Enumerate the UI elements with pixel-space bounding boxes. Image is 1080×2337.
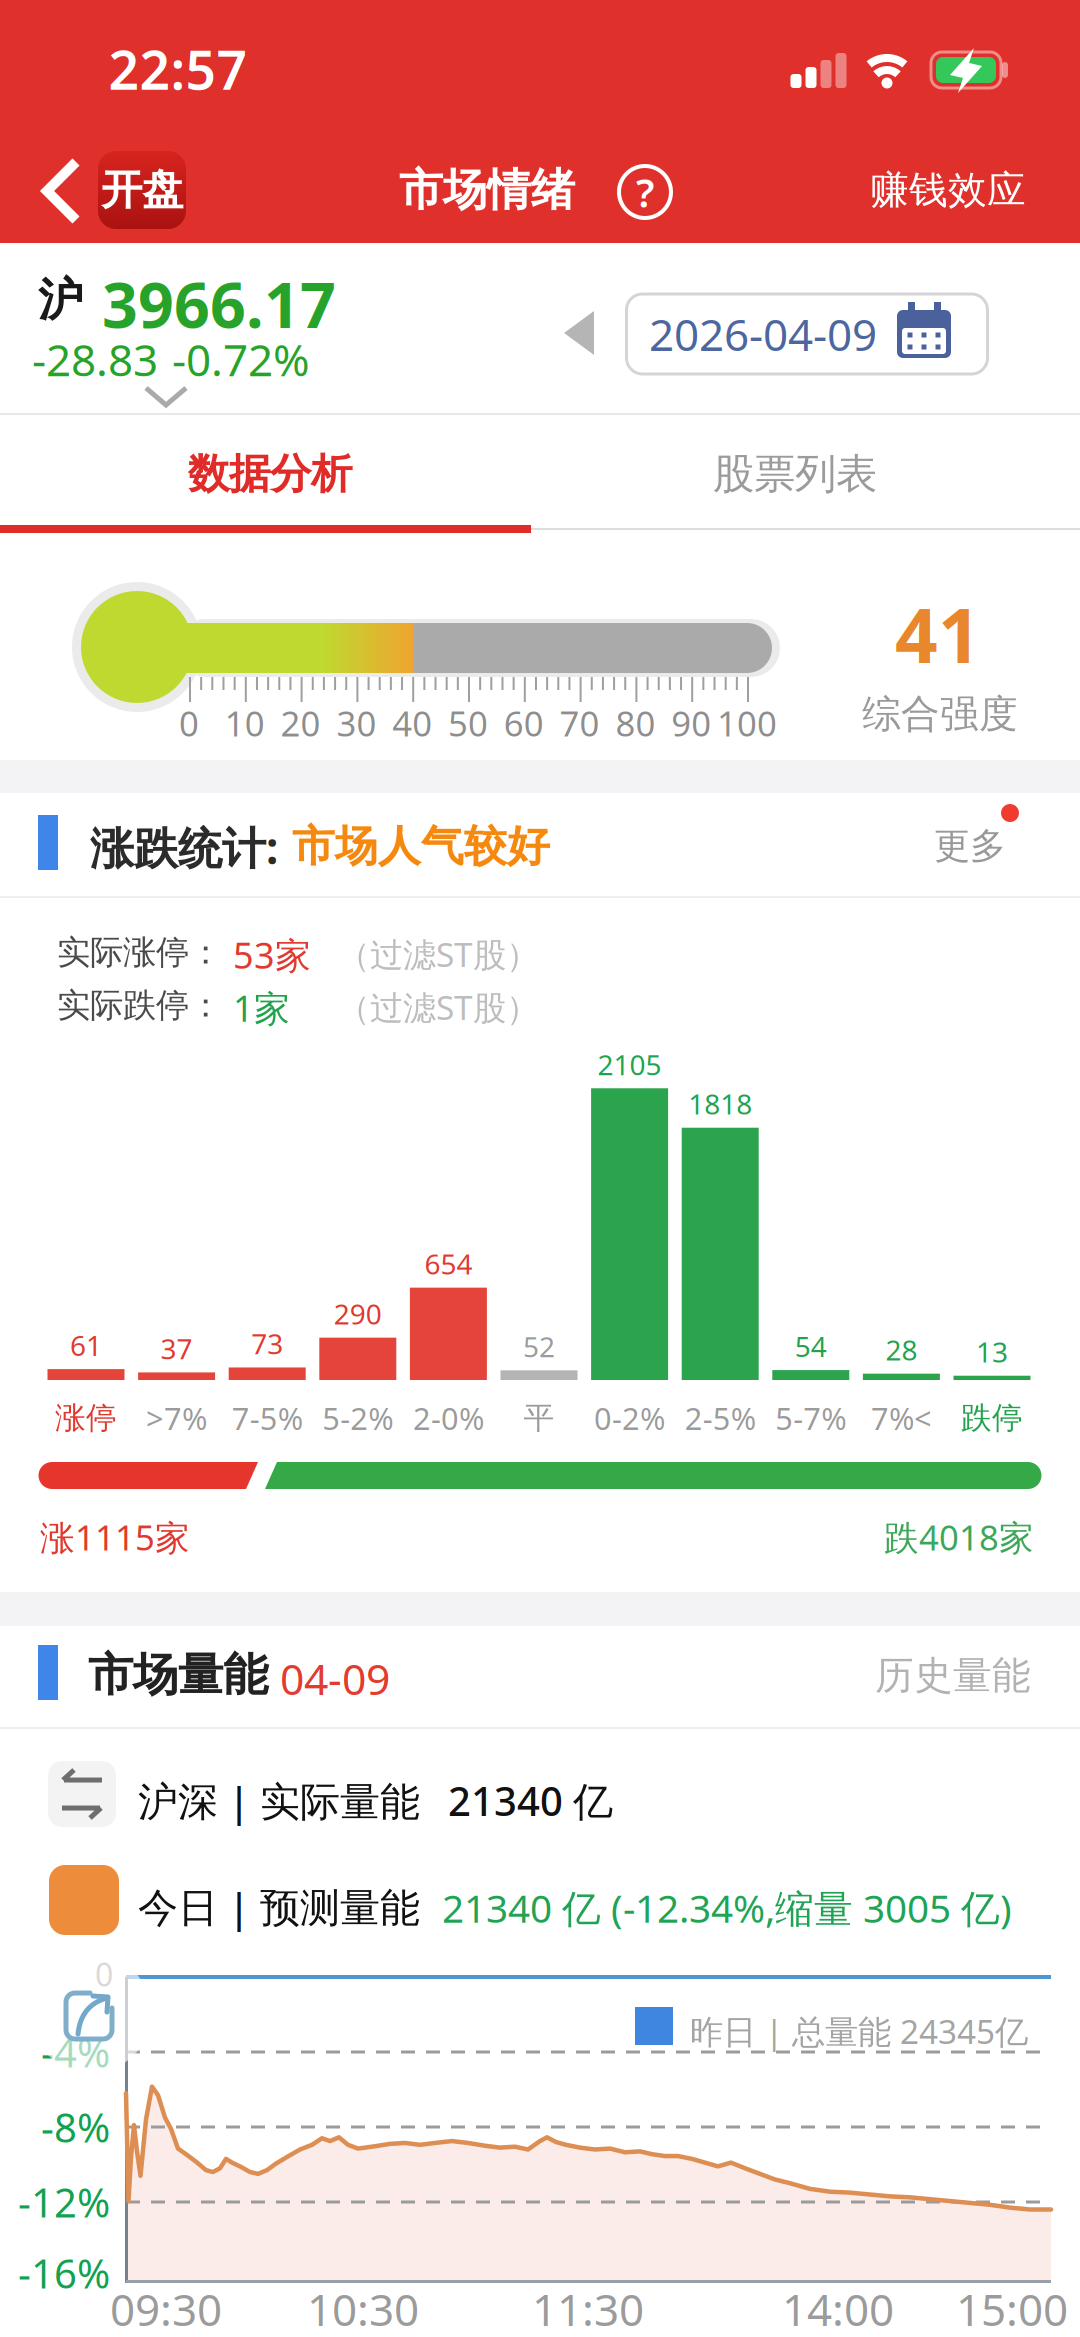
staticText: 市场量能 [88,1647,268,1703]
staticText: 历史量能 [875,1652,1031,1699]
staticText: 赚钱效应 [870,166,1026,214]
staticText: 52 [523,1328,555,1365]
staticText: （过滤ST股） [337,985,539,1029]
button[interactable]: ? [619,166,671,218]
staticText: 沪 [38,272,83,328]
staticText: 涨跌统计: [90,818,278,876]
staticText: 涨停 [55,1399,117,1437]
staticText: （过滤ST股） [337,932,539,976]
staticText: 10 [225,700,265,746]
button[interactable]: 股票列表 [540,415,1080,525]
staticText: 0 [95,1953,113,1995]
button[interactable] [29,1951,153,2075]
staticText: >7% [146,1398,207,1438]
staticText: 实际跌停： [57,985,222,1026]
staticText: 53家 [233,931,311,979]
staticText: 1家 [233,984,290,1032]
button[interactable]: 数据分析 [0,415,540,525]
staticText: 73 [251,1325,283,1362]
staticText: 综合强度 [862,690,1018,738]
staticText: 60 [504,700,544,746]
button[interactable]: 历史量能 [875,1652,1031,1699]
staticText: 15:00 [956,2280,1068,2337]
staticText: 数据分析 [188,449,352,499]
staticText: 实际涨停： [57,932,222,973]
staticText: 股票列表 [713,449,877,499]
staticText: 20 [281,700,321,746]
staticText: 更多 [934,824,1006,868]
staticText: 开盘 [101,165,183,215]
staticText: 290 [334,1295,382,1332]
staticText: 21340 亿 [448,1774,613,1827]
staticText: 11:30 [532,2280,644,2337]
staticText: 21340 亿 (-12.34%,缩量 3005 亿) [442,1882,1012,1933]
staticText: ? [636,165,654,218]
staticText: 22:57 [108,34,247,104]
staticText: 2026-04-09 [649,305,877,363]
staticText: 平 [523,1399,554,1437]
staticText: -8% [41,2100,110,2153]
staticText: 61 [70,1326,102,1364]
staticText: 40 [392,700,432,746]
staticText: 654 [424,1245,472,1282]
staticText: -4% [41,2025,110,2078]
staticText: 跌4018家 [884,1514,1034,1560]
staticText: 14:00 [782,2280,894,2337]
staticText: 10:30 [307,2280,419,2337]
staticText: 28 [885,1331,917,1368]
staticText: 市场情绪 [399,163,575,217]
staticText: 0 [179,700,199,746]
staticText: 今日 | 预测量能 [138,1880,420,1933]
button[interactable]: 赚钱效应 [870,166,1026,214]
staticText: -16% [18,2246,110,2299]
staticText: 7-5% [232,1398,303,1438]
staticText: 沪深 | 实际量能 [138,1774,420,1827]
staticText: 昨日 | 总量能 24345亿 [690,2009,1028,2053]
staticText: -0.72% [172,330,310,388]
staticText: 09:30 [110,2280,222,2337]
staticText: 50 [448,700,488,746]
staticText: 5-2% [322,1398,393,1438]
staticText: 90 [671,700,711,746]
staticText: 1818 [688,1085,752,1122]
staticText: 04-09 [280,1650,390,1707]
staticText: 54 [795,1327,827,1365]
staticText: -12% [18,2175,110,2228]
staticText: 2-0% [413,1398,484,1438]
staticText: 80 [615,700,655,746]
staticText: 100 [717,700,777,746]
staticText: 13 [976,1333,1008,1370]
staticText: 涨1115家 [40,1514,190,1560]
staticText: 70 [560,700,600,746]
button[interactable]: 2026-04-09 [556,290,992,380]
staticText: 5-7% [775,1398,846,1438]
staticText: -28.83 [32,330,158,388]
staticText: 41 [895,584,981,684]
staticText: 市场人气较好 [292,820,550,872]
button[interactable]: 开盘 [32,148,192,232]
staticText: 2-5% [685,1398,756,1438]
staticText: 2105 [598,1046,662,1083]
staticText: 30 [336,700,376,746]
staticText: 3966.17 [102,262,336,345]
staticText: 7%< [871,1398,932,1438]
staticText: 0-2% [594,1398,665,1438]
button[interactable]: 更多 [925,798,1037,864]
staticText: 跌停 [961,1399,1023,1437]
staticText: 37 [161,1330,193,1367]
